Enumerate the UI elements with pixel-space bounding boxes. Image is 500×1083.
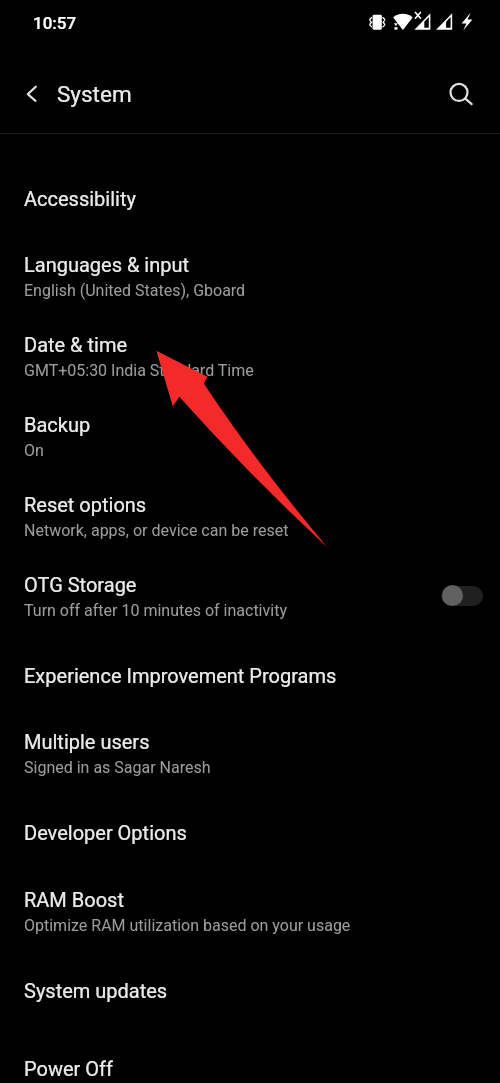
staticText: Backup <box>24 413 91 436</box>
button[interactable]: RAM Boost <box>0 852 500 931</box>
button[interactable]: Experience Improvement Programs <box>0 616 500 695</box>
staticText: 10:57 <box>33 13 77 33</box>
staticText: Optimize RAM utilization based on your u… <box>24 916 351 935</box>
button[interactable]: Accessibility <box>0 160 500 218</box>
staticText: GMT+05:30 India Standard Time <box>24 361 254 380</box>
staticText: RAM Boost <box>24 888 124 911</box>
button[interactable]: System updates <box>0 931 500 1016</box>
button[interactable]: Multiple users <box>0 695 500 773</box>
button[interactable]: Developer Options <box>0 773 500 852</box>
staticText: Turn off after 10 minutes of inactivity <box>24 601 287 620</box>
staticText: Network, apps, or device can be reset <box>24 521 289 540</box>
staticText: System <box>57 81 132 107</box>
button[interactable]: Back <box>10 72 54 116</box>
button[interactable]: Power Off <box>0 1016 500 1083</box>
button[interactable]: Search <box>437 70 481 114</box>
staticText: System updates <box>24 979 168 1002</box>
button[interactable]: Date & time <box>0 291 500 371</box>
staticText: Reset options <box>24 493 147 516</box>
button[interactable]: Languages & input <box>0 218 500 291</box>
button[interactable]: OTG Storage, off <box>439 584 485 608</box>
staticText: Date & time <box>24 333 128 356</box>
staticText: Signed in as Sagar Naresh <box>24 758 211 777</box>
staticText: Languages & input <box>24 253 190 276</box>
staticText: Experience Improvement Programs <box>24 664 337 687</box>
button[interactable]: OTG Storage <box>0 531 500 616</box>
staticText: Multiple users <box>24 730 150 753</box>
staticText: Accessibility <box>24 187 136 210</box>
staticText: Developer Options <box>24 821 187 844</box>
staticText: Power Off <box>24 1057 113 1080</box>
staticText: OTG Storage <box>24 573 137 596</box>
staticText: On <box>24 441 44 460</box>
button[interactable]: Backup <box>0 371 500 451</box>
staticText: English (United States), Gboard <box>24 281 246 300</box>
button[interactable]: Reset options <box>0 451 500 531</box>
